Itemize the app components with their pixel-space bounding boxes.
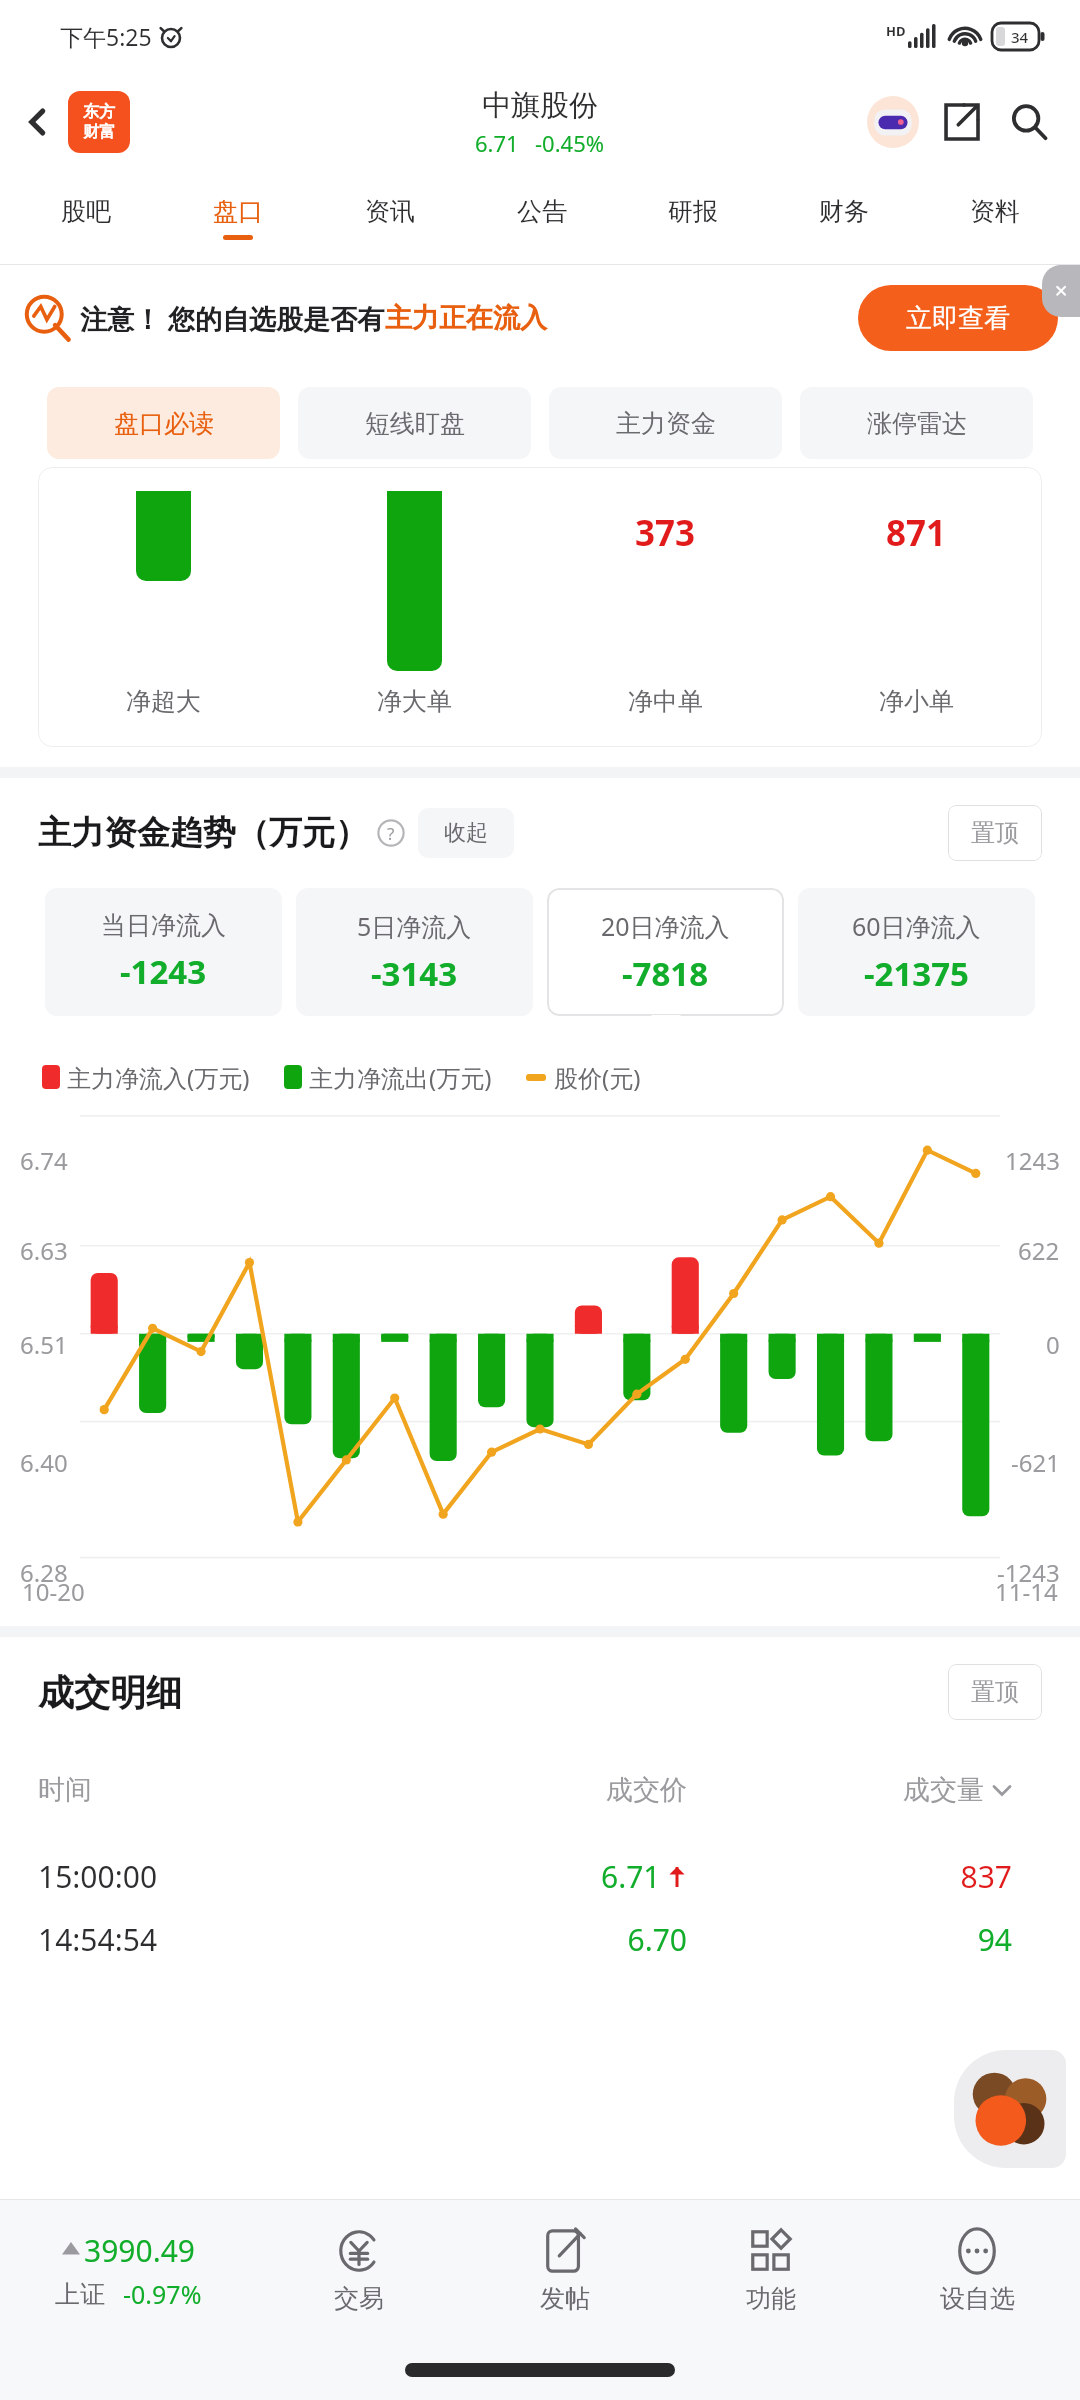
staticText: 373 [635, 509, 696, 557]
staticText: 上证 [55, 2279, 105, 2310]
button[interactable]: 资料 [919, 172, 1070, 264]
button[interactable]: 短线盯盘 [298, 387, 531, 459]
button[interactable]: 设自选 [874, 2200, 1080, 2340]
staticText: 14:54:54 [38, 1919, 362, 1960]
staticText: 6.40 [20, 1446, 68, 1479]
staticText: 设自选 [940, 2283, 1015, 2314]
staticText: 6.51 [20, 1328, 68, 1361]
staticText: 6.28 [20, 1556, 68, 1589]
button[interactable]: 15:00:00 [38, 1833, 1042, 1919]
staticText: 财富 [83, 122, 115, 142]
staticText: 涨停雷达 [867, 408, 967, 439]
button[interactable]: 主力资金 [549, 387, 782, 459]
staticText: 94 [687, 1919, 1012, 1960]
staticText: 主力正在流入 [385, 301, 547, 335]
staticText: 1243 [1005, 1144, 1060, 1177]
staticText: 成交量 [903, 1773, 984, 1807]
staticText: 资料 [970, 196, 1020, 227]
staticText: 盘口 [213, 196, 263, 227]
button[interactable]: 公告 [466, 172, 617, 264]
button[interactable]: 置顶 [948, 1664, 1042, 1720]
button[interactable]: 置顶 [948, 805, 1042, 861]
button[interactable]: 活动入口 [954, 2050, 1066, 2168]
button[interactable]: 涨停雷达 [800, 387, 1033, 459]
staticText: 60日净流入 [852, 909, 981, 943]
staticText: 置顶 [971, 818, 1019, 848]
button[interactable]: 搜索 [998, 91, 1060, 153]
staticText: 10-20 [22, 1575, 85, 1608]
staticText: 公告 [517, 196, 567, 227]
staticText: ? [387, 822, 395, 845]
staticText: 6.74 [20, 1144, 68, 1177]
staticText: 交易 [334, 2283, 384, 2314]
staticText: 6.70 [362, 1919, 687, 1960]
staticText: 3990.49 [84, 2230, 195, 2271]
staticText: 6.71 [475, 128, 519, 158]
button[interactable]: 财务 [768, 172, 919, 264]
staticText: 收起 [444, 819, 488, 847]
button[interactable]: 60日净流入 [798, 888, 1035, 1016]
staticText: ✕ [1054, 281, 1069, 301]
staticText: 资讯 [365, 196, 415, 227]
staticText: 622 [1018, 1234, 1060, 1267]
button[interactable]: 盘口 [162, 172, 314, 264]
button[interactable]: 20日净流入 [547, 888, 784, 1016]
button[interactable]: 分享 [930, 91, 992, 153]
staticText: 837 [687, 1856, 1012, 1897]
staticText: 净超大 [126, 686, 201, 717]
button[interactable]: 交易 [256, 2200, 462, 2340]
staticText: 6.63 [20, 1234, 68, 1267]
staticText: 成交明细 [38, 1670, 182, 1715]
button[interactable]: 3990.49 [0, 2230, 256, 2311]
button[interactable]: 收起 [418, 808, 514, 858]
staticText: HD [886, 22, 906, 40]
staticText: 立即查看 [906, 302, 1010, 335]
staticText: 15:00:00 [38, 1856, 362, 1897]
staticText: 净中单 [628, 686, 703, 717]
staticText: 置顶 [971, 1677, 1019, 1707]
staticText: 成交价 [362, 1773, 687, 1807]
button[interactable]: AI助手 [862, 91, 924, 153]
staticText: 中旗股份 [482, 87, 598, 124]
staticText: 0 [1046, 1328, 1060, 1361]
staticText: -0.45% [535, 128, 605, 158]
button[interactable]: 股吧 [10, 172, 162, 264]
button[interactable]: 5日净流入 [296, 888, 533, 1016]
button[interactable]: 东方财富 [68, 91, 130, 153]
button[interactable]: 发帖 [462, 2200, 668, 2340]
staticText: 主力资金 [616, 408, 716, 439]
staticText: 当日净流入 [101, 910, 226, 941]
staticText: 净小单 [879, 686, 954, 717]
staticText: 财务 [819, 196, 869, 227]
staticText: -621 [1011, 1446, 1060, 1479]
staticText: -0.97% [123, 2277, 202, 2311]
staticText: 功能 [746, 2283, 796, 2314]
staticText: 时间 [38, 1773, 362, 1807]
staticText: -21375 [864, 951, 969, 996]
staticText: -3143 [371, 951, 458, 996]
staticText: 20日净流入 [601, 909, 730, 943]
staticText: 股吧 [61, 196, 111, 227]
staticText: 净大单 [377, 686, 452, 717]
button[interactable]: 当日净流入 [45, 888, 282, 1016]
button[interactable]: 立即查看 [858, 285, 1058, 351]
button[interactable]: 盘口必读 [47, 387, 280, 459]
staticText: 主力净流出(万元) [309, 1061, 492, 1094]
button[interactable]: 研报 [617, 172, 768, 264]
staticText: 5日净流入 [357, 909, 472, 943]
staticText: 34 [1011, 27, 1029, 47]
staticText: -7818 [622, 951, 709, 996]
staticText: 股价(元) [554, 1061, 641, 1094]
staticText: 主力净流入(万元) [67, 1061, 250, 1094]
button[interactable]: 注意！ 您的自选股是否有 [24, 265, 1058, 371]
button[interactable]: 关闭 [1042, 265, 1080, 317]
staticText: 注意！ 您的自选股是否有 [80, 300, 385, 337]
staticText: 871 [886, 509, 947, 557]
button[interactable]: 功能 [668, 2200, 874, 2340]
staticText: 下午5:25 [60, 21, 152, 52]
staticText: 主力资金趋势（万元） [38, 812, 368, 854]
staticText: 研报 [668, 196, 718, 227]
button[interactable]: 说明 [376, 818, 406, 848]
button[interactable]: 资讯 [314, 172, 466, 264]
button[interactable]: 返回 [12, 96, 64, 148]
